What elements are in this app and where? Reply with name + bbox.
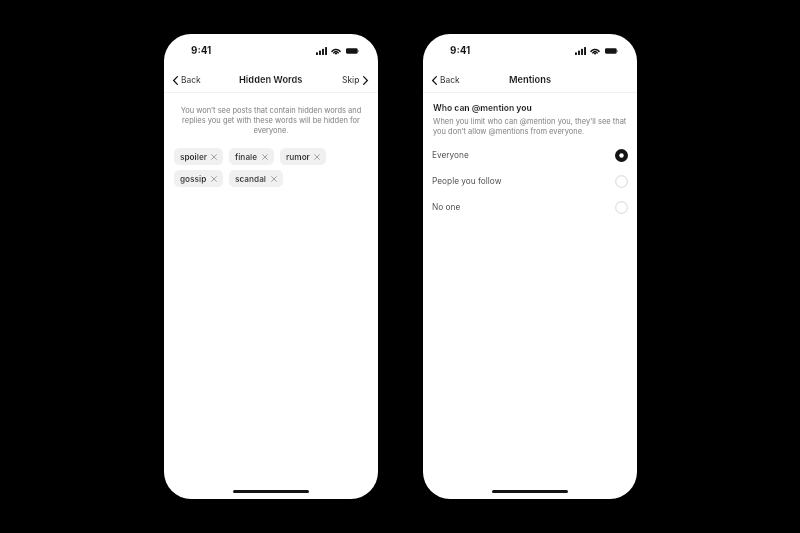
staticText: Everyone	[432, 150, 469, 160]
button[interactable]: gossip	[174, 170, 223, 187]
staticText: When you limit who can @mention you, the…	[433, 117, 637, 136]
staticText: gossip	[180, 174, 207, 184]
staticText: Hidden Words	[239, 74, 303, 85]
button[interactable]: Everyone	[423, 142, 637, 168]
button[interactable]: No one	[423, 194, 637, 220]
button[interactable]: Back	[164, 70, 209, 90]
button[interactable]: rumor	[280, 148, 326, 165]
staticText: rumor	[286, 152, 310, 162]
other: Remove gossip	[211, 176, 217, 182]
other: Remove finale	[262, 154, 268, 160]
staticText: Mentions	[509, 74, 552, 85]
other: Remove spoiler	[211, 154, 217, 160]
staticText: 9:41	[191, 45, 212, 57]
staticText: 9:41	[450, 45, 471, 57]
other: Remove rumor	[314, 154, 320, 160]
staticText: Back	[440, 75, 460, 85]
button[interactable]: scandal	[229, 170, 283, 187]
staticText: No one	[432, 202, 461, 212]
button[interactable]: Skip	[334, 70, 378, 90]
staticText: People you follow	[432, 176, 502, 186]
staticText: Skip	[342, 75, 360, 85]
button[interactable]: finale	[229, 148, 274, 165]
staticText: spoiler	[180, 152, 207, 162]
button[interactable]: spoiler	[174, 148, 223, 165]
other: Remove scandal	[271, 176, 277, 182]
staticText: Who can @mention you	[433, 103, 532, 113]
button[interactable]: People you follow	[423, 168, 637, 194]
other: Not selected	[612, 198, 630, 216]
button[interactable]: Back	[423, 70, 468, 90]
staticText: finale	[235, 152, 258, 162]
other: Selected	[612, 146, 630, 164]
staticText: Back	[181, 75, 201, 85]
other: Not selected	[612, 172, 630, 190]
staticText: scandal	[235, 174, 267, 184]
staticText: You won’t see posts that contain hidden …	[179, 106, 363, 135]
